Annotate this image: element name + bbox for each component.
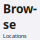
- staticText: Locations: [3, 32, 27, 39]
- staticText: Browse: [3, 0, 37, 32]
